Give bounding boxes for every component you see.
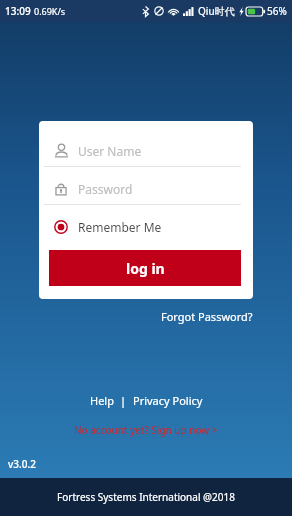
staticText: Remember Me [78, 219, 162, 235]
staticText: 0.69K/s [34, 5, 66, 17]
staticText: Qiu时代 [198, 4, 235, 18]
staticText: 56% [267, 4, 287, 18]
button[interactable]: Help [84, 390, 120, 411]
staticText: User Name [78, 143, 142, 159]
button[interactable]: Password [44, 173, 241, 205]
button[interactable]: Remember Me [44, 214, 241, 240]
staticText: Help [90, 393, 114, 408]
button[interactable]: User Name [44, 135, 241, 167]
staticText: | [120, 393, 127, 408]
staticText: v3.0.2 [8, 457, 36, 471]
button[interactable]: Privacy Policy [127, 390, 209, 411]
button[interactable]: Forgot Password? [153, 299, 253, 330]
staticText: log in [126, 259, 165, 278]
button[interactable]: No account yet? Sign up now > [64, 420, 228, 440]
staticText: Password [78, 181, 133, 197]
staticText: Forgot Password? [161, 309, 253, 324]
staticText: Fortress Systems International @2018 [57, 490, 235, 504]
staticText: Privacy Policy [133, 393, 203, 408]
staticText: 13:09 [5, 4, 31, 18]
staticText: No account yet? Sign up now > [74, 423, 218, 437]
button[interactable]: log in [49, 250, 241, 286]
